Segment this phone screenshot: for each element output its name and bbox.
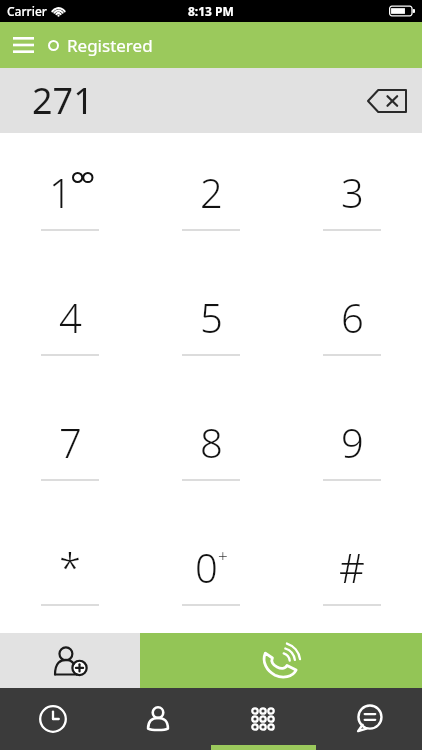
staticText: 2 (200, 165, 223, 219)
button[interactable]: # (281, 508, 422, 633)
button[interactable]: Backspace (362, 81, 412, 121)
staticText: Carrier (7, 3, 47, 19)
button[interactable]: 9 (281, 383, 422, 508)
staticText: 6 (341, 290, 364, 344)
button[interactable]: * (0, 508, 140, 633)
staticText: 5 (200, 290, 223, 344)
staticText: 8 (200, 415, 223, 469)
button[interactable]: 3 (281, 133, 422, 258)
staticText: 4 (59, 290, 82, 344)
button[interactable]: Recents (0, 688, 105, 750)
button[interactable]: Add contact (0, 633, 140, 688)
staticText: 8:13 PM (188, 3, 234, 19)
staticText: * (59, 540, 82, 594)
button[interactable]: 5 (140, 258, 281, 383)
staticText: 7 (59, 415, 82, 469)
staticText: # (339, 540, 365, 594)
staticText: 1 (49, 165, 72, 219)
button[interactable]: 1 (0, 133, 140, 258)
staticText: 0 (195, 540, 218, 594)
staticText: + (218, 544, 228, 567)
staticText: 271 (32, 76, 94, 125)
button[interactable]: Registered (48, 34, 153, 57)
button[interactable]: 0 (140, 508, 281, 633)
button[interactable]: Call (140, 633, 422, 688)
button[interactable]: 4 (0, 258, 140, 383)
button[interactable]: 8 (140, 383, 281, 508)
button[interactable]: Keypad (210, 688, 316, 750)
staticText: 3 (341, 165, 364, 219)
staticText: 9 (341, 415, 364, 469)
button[interactable]: Contacts (105, 688, 210, 750)
button[interactable]: 7 (0, 383, 140, 508)
button[interactable]: 2 (140, 133, 281, 258)
button[interactable]: Menu (6, 28, 40, 62)
staticText: Registered (67, 34, 153, 57)
button[interactable]: 6 (281, 258, 422, 383)
button[interactable]: Messages (316, 688, 422, 750)
